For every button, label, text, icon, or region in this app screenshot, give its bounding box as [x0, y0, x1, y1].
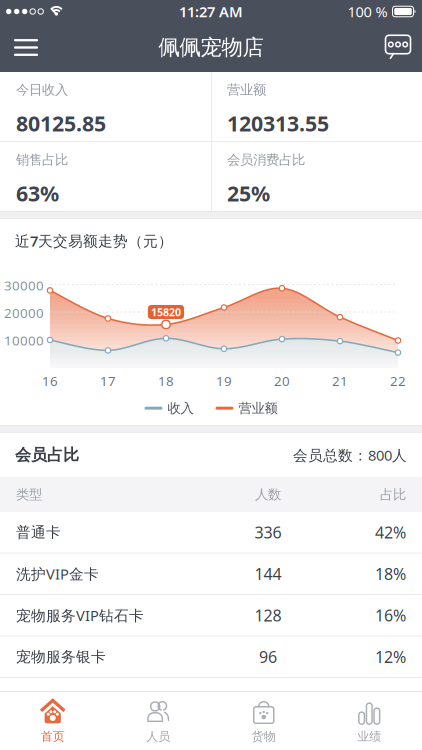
staticText: 业绩 — [357, 729, 381, 744]
staticText: 今日收入 — [16, 82, 68, 98]
staticText: 20 — [274, 372, 290, 390]
staticText: 营业额 — [238, 400, 277, 416]
staticText: 人数 — [255, 486, 281, 503]
staticText: 120313.55 — [227, 109, 329, 137]
staticText: 25% — [227, 179, 270, 207]
staticText: 会员消费占比 — [227, 152, 305, 168]
staticText: 宠物服务VIP钻石卡 — [16, 605, 144, 625]
staticText: 普通卡 — [16, 523, 61, 541]
staticText: 收入 — [167, 400, 193, 416]
button[interactable]: Menu — [4, 25, 48, 69]
staticText: 22 — [390, 372, 406, 390]
staticText: 16% — [375, 605, 406, 626]
staticText: 96 — [259, 646, 277, 667]
staticText: 100 % — [347, 2, 387, 21]
staticText: 11:27 AM — [179, 2, 243, 21]
staticText: 30000 — [4, 276, 44, 294]
staticText: 144 — [254, 563, 281, 584]
staticText: 10000 — [4, 331, 44, 349]
staticText: 20000 — [4, 304, 44, 322]
staticText: 营业额 — [227, 82, 266, 98]
button[interactable]: 首页 — [0, 692, 105, 750]
staticText: 19 — [216, 372, 232, 390]
button[interactable]: 人员 — [105, 692, 211, 750]
staticText: 80125.85 — [16, 109, 106, 137]
staticText: 16 — [42, 372, 58, 390]
staticText: 63% — [16, 179, 59, 207]
staticText: 42% — [375, 522, 406, 543]
staticText: 人员 — [146, 729, 170, 744]
staticText: 类型 — [16, 486, 42, 503]
staticText: 21 — [332, 372, 348, 390]
staticText: 12% — [375, 646, 406, 667]
staticText: 会员占比 — [15, 445, 79, 465]
staticText: 18 — [158, 372, 174, 390]
button[interactable]: 业绩 — [316, 692, 422, 750]
staticText: 销售占比 — [16, 152, 68, 168]
staticText: 货物 — [252, 729, 276, 744]
staticText: 首页 — [41, 729, 65, 744]
staticText: 15820 — [151, 305, 181, 319]
staticText: 128 — [254, 605, 281, 626]
staticText: 336 — [254, 522, 281, 543]
staticText: 18% — [375, 563, 406, 584]
staticText: 会员总数：800人 — [293, 445, 407, 465]
staticText: 17 — [100, 372, 116, 390]
button[interactable]: 货物 — [211, 692, 316, 750]
staticText: 洗护VIP金卡 — [16, 564, 99, 583]
staticText: 占比 — [380, 486, 406, 503]
button[interactable]: Messages — [376, 25, 420, 69]
staticText: 宠物服务银卡 — [16, 648, 106, 666]
staticText: 佩佩宠物店 — [158, 34, 263, 61]
staticText: 近7天交易额走势（元） — [15, 231, 173, 250]
